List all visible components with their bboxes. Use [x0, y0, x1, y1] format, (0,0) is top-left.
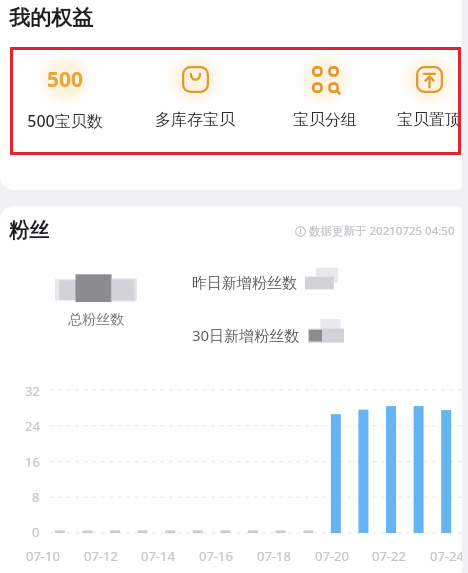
staticText: 16 — [25, 453, 40, 471]
staticText: 数据更新于 20210725 04:50 — [309, 223, 455, 239]
staticText: 昨日新增粉丝数 — [192, 274, 297, 293]
staticText: 总粉丝数 — [68, 311, 124, 329]
staticText: 30日新增粉丝数 — [192, 325, 300, 345]
staticText: 07-14 — [141, 547, 175, 565]
button[interactable]: 宝贝置顶 — [390, 50, 468, 132]
staticText: 24 — [25, 417, 40, 435]
staticText: 我的权益 — [9, 5, 93, 31]
staticText: 07-16 — [199, 547, 233, 565]
staticText: 多库存宝贝 — [155, 110, 235, 130]
staticText: 32 — [25, 382, 40, 400]
button[interactable]: 数据说明 — [293, 221, 457, 241]
staticText: 07-12 — [84, 547, 118, 565]
other: 数据说明 — [295, 226, 306, 237]
other: 多库存宝贝 — [182, 66, 209, 93]
staticText: 500 — [47, 65, 84, 94]
other: 宝贝分组 — [312, 66, 339, 93]
staticText: 宝贝置顶 — [397, 110, 461, 130]
button[interactable]: 宝贝分组 — [260, 50, 390, 132]
staticText: 8 — [32, 488, 40, 506]
staticText: 07-10 — [26, 547, 60, 565]
other: 宝贝置顶 — [416, 66, 443, 93]
button[interactable]: 500 — [0, 50, 130, 134]
staticText: 粉丝 — [9, 218, 49, 243]
staticText: 500宝贝数 — [27, 110, 103, 132]
staticText: 07-22 — [372, 547, 406, 565]
staticText: 0 — [32, 523, 40, 541]
staticText: 07-18 — [257, 547, 291, 565]
staticText: 07-24 — [430, 547, 464, 565]
staticText: 07-20 — [315, 547, 349, 565]
staticText: 宝贝分组 — [293, 110, 357, 130]
button[interactable]: 多库存宝贝 — [130, 50, 260, 132]
